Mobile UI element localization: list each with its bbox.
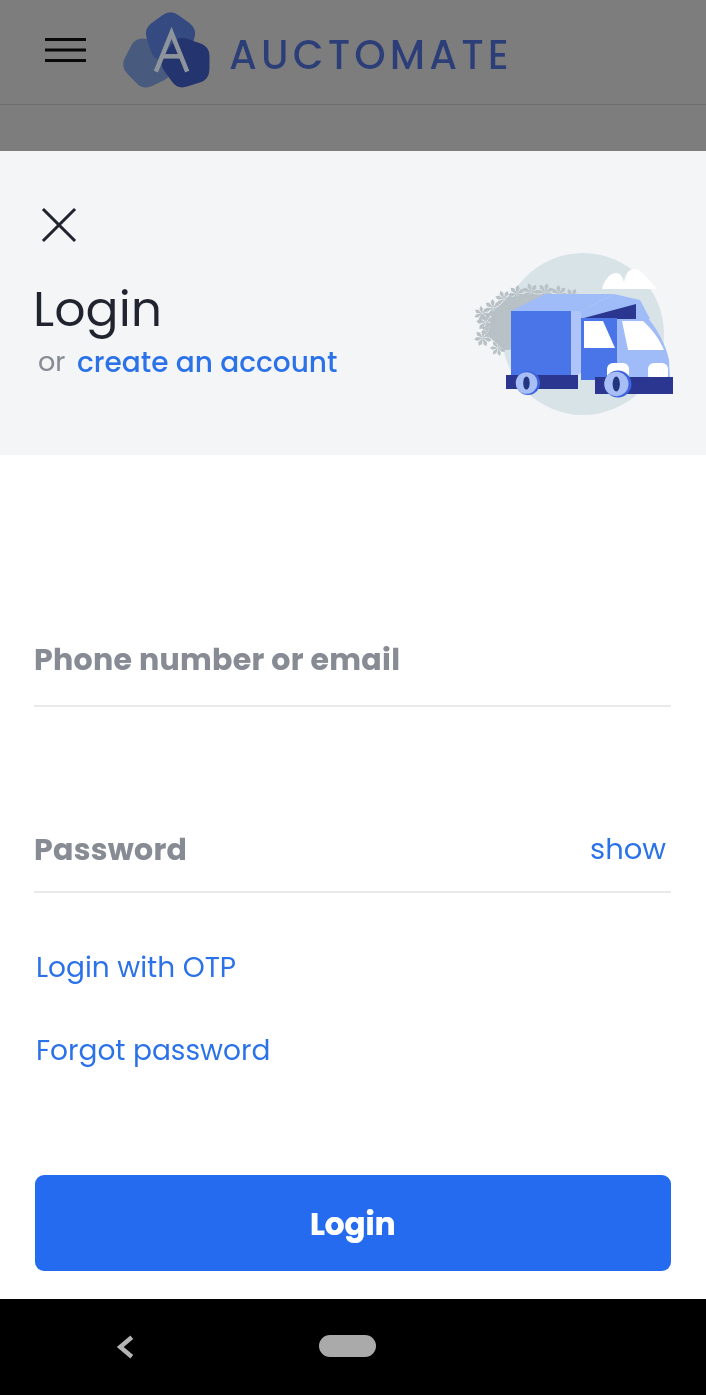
- button[interactable]: Login: [35, 1175, 671, 1271]
- staticText: Login with OTP: [36, 948, 237, 987]
- button[interactable]: Open navigation menu: [29, 22, 101, 78]
- staticText: Login: [33, 275, 163, 344]
- button[interactable]: Home: [319, 1335, 376, 1357]
- staticText: AUCTOMATE: [229, 27, 513, 83]
- staticText: Password: [34, 829, 188, 871]
- button[interactable]: Close: [30, 196, 87, 253]
- button[interactable]: Show password: [590, 829, 667, 870]
- staticText: show: [590, 829, 667, 870]
- staticText: Phone number or email: [34, 639, 401, 681]
- button[interactable]: Back: [98, 1319, 154, 1375]
- button[interactable]: Login with OTP: [36, 948, 237, 987]
- staticText: create an account: [77, 343, 338, 382]
- button[interactable]: Forgot password: [36, 1031, 271, 1070]
- button[interactable]: create an account: [77, 343, 338, 382]
- staticText: Forgot password: [36, 1031, 271, 1070]
- staticText: or: [38, 343, 66, 381]
- staticText: Login: [310, 1202, 396, 1245]
